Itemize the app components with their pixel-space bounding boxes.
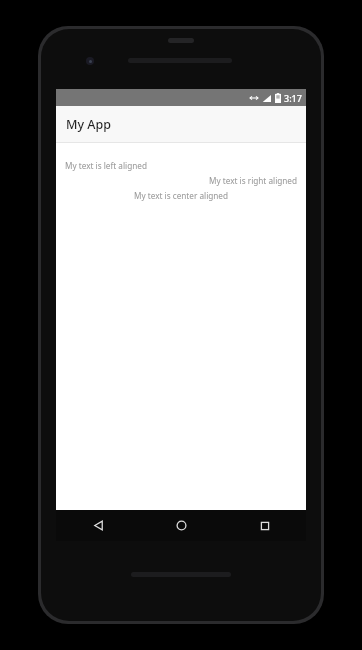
staticText: My text is left aligned: [65, 160, 297, 171]
staticText: My text is center aligned: [65, 190, 297, 201]
staticText: My App: [66, 116, 112, 133]
staticText: 3:17: [284, 92, 302, 104]
staticText: My text is right aligned: [65, 175, 297, 186]
button[interactable]: My App: [56, 106, 306, 142]
button[interactable]: Home: [140, 510, 223, 541]
button[interactable]: Recent apps: [223, 510, 306, 541]
button[interactable]: Back: [56, 510, 140, 541]
